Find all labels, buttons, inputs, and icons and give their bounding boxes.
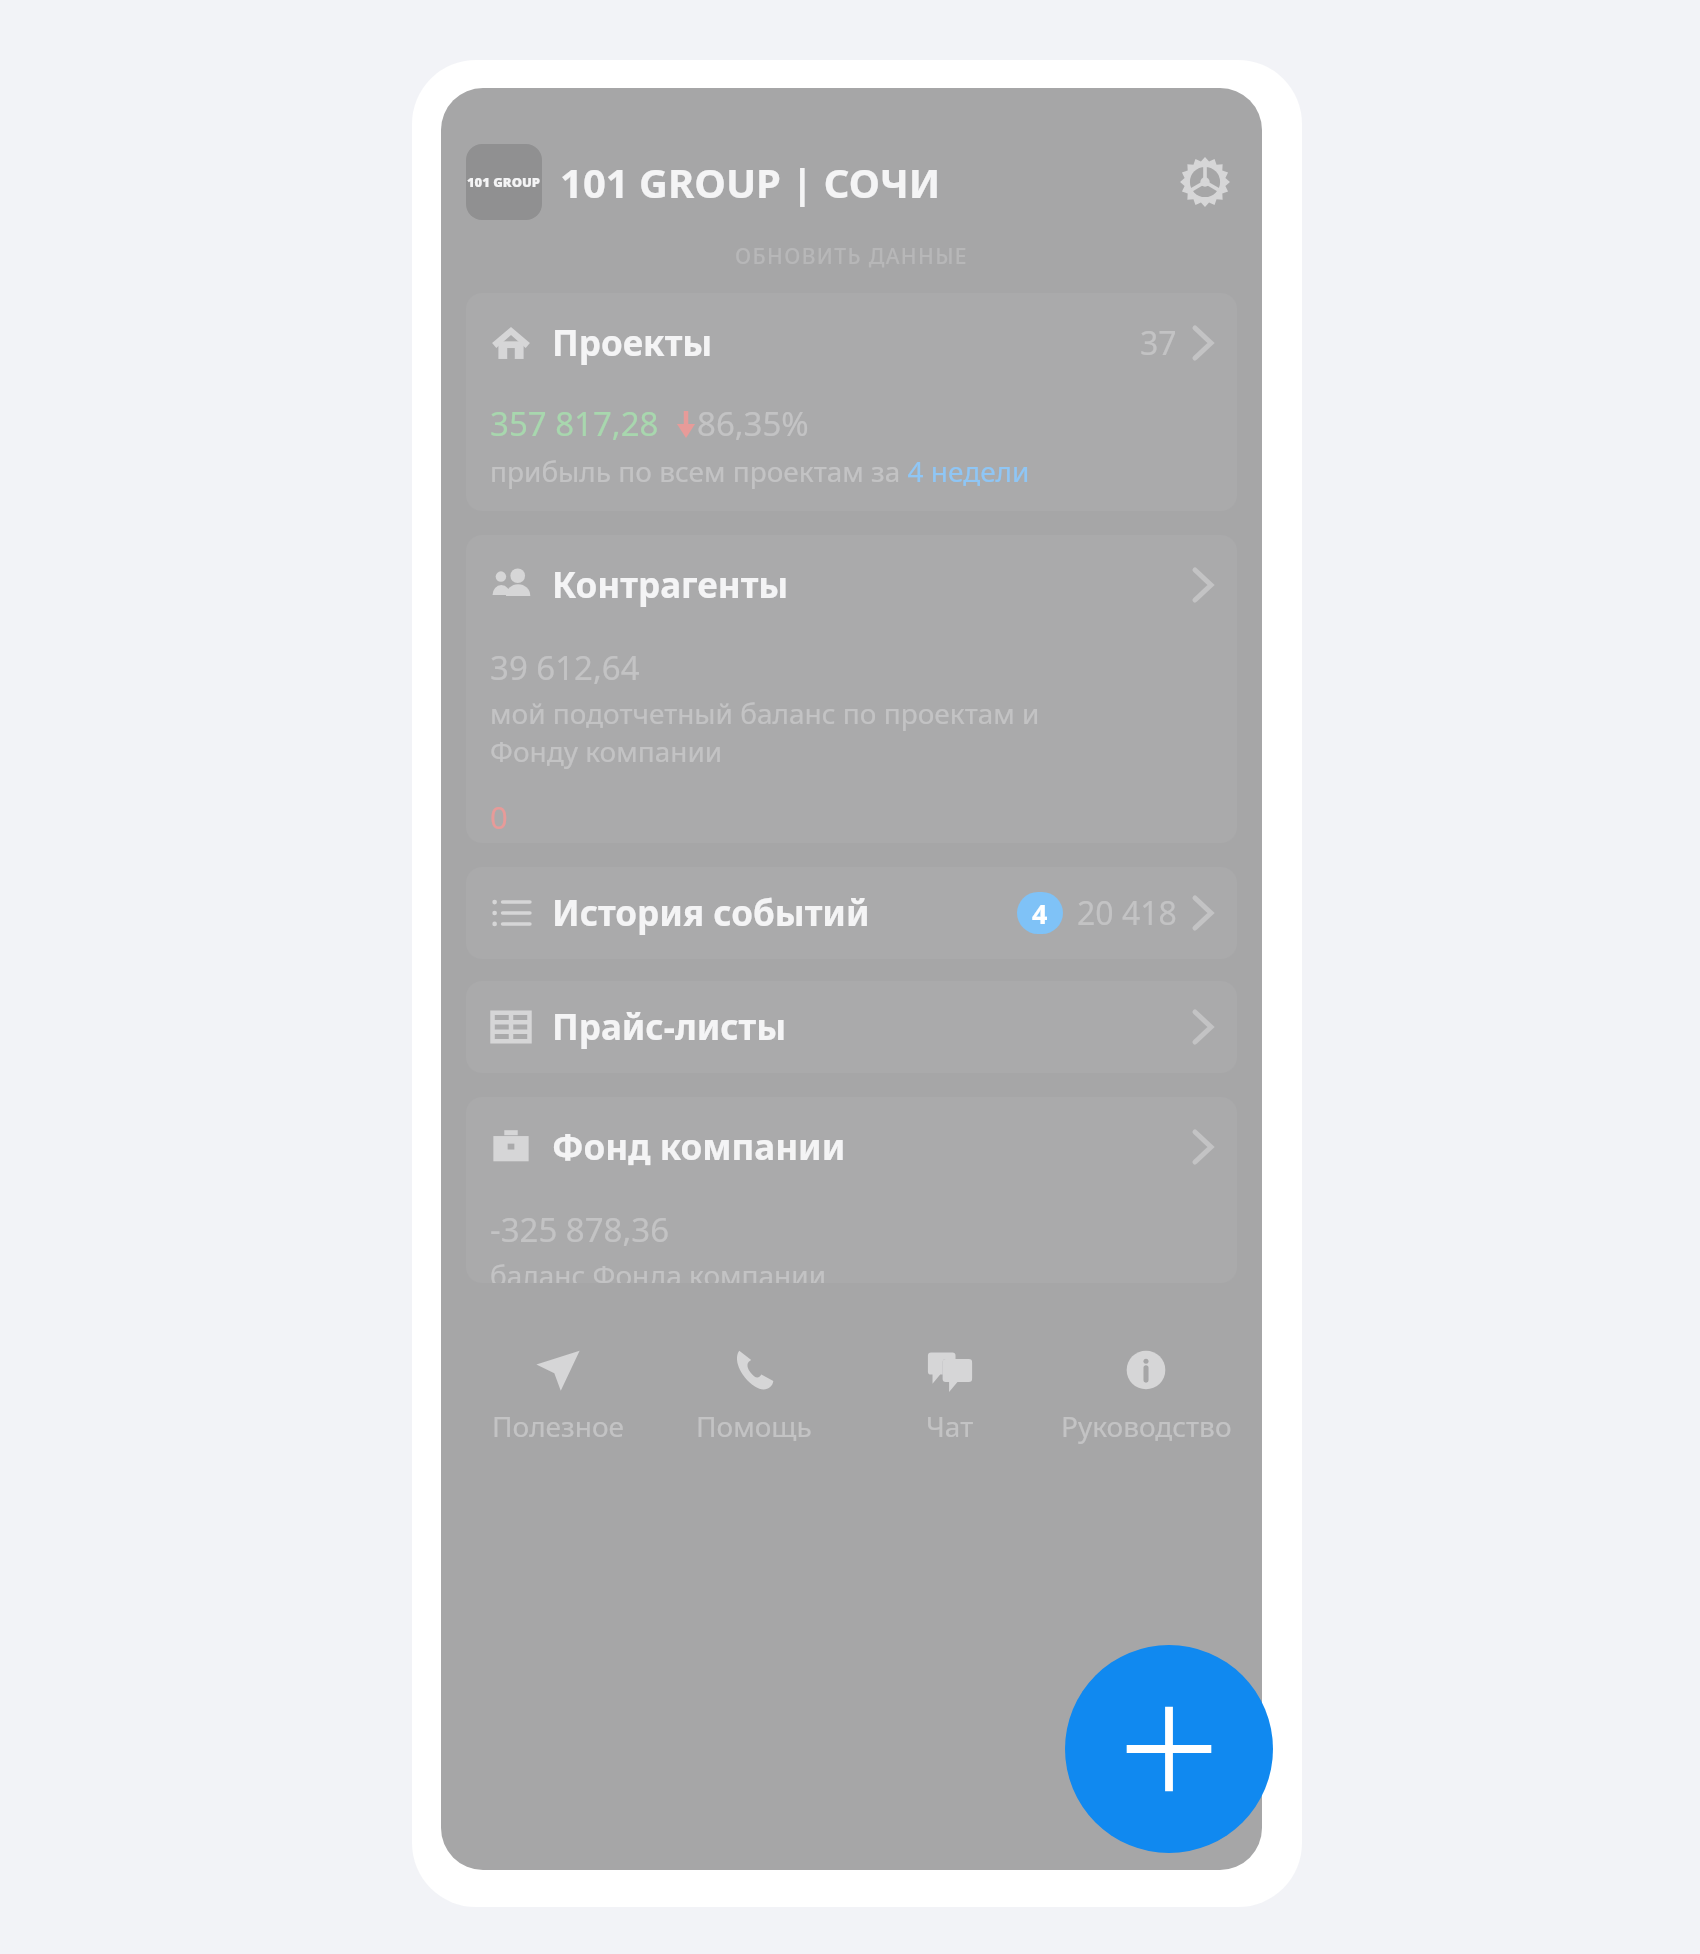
staticText: 86,35% bbox=[697, 401, 809, 446]
button[interactable]: Полезное bbox=[459, 1339, 656, 1453]
button[interactable]: Add bbox=[1065, 1645, 1273, 1853]
staticText: 4 bbox=[1032, 895, 1048, 932]
button[interactable]: Помощь bbox=[656, 1339, 852, 1453]
staticText: 37 bbox=[1140, 321, 1177, 365]
staticText: Полезное bbox=[492, 1407, 624, 1445]
button[interactable]: Контрагенты bbox=[466, 535, 1237, 843]
staticText: 357 817,28 bbox=[490, 401, 659, 446]
staticText: Помощь bbox=[696, 1407, 812, 1445]
staticText: баланс Фонда компании bbox=[490, 1256, 827, 1283]
staticText: Фонд компании bbox=[552, 1123, 846, 1171]
button[interactable]: Settings bbox=[1173, 150, 1237, 214]
button[interactable]: ОБНОВИТЬ ДАННЫЕ bbox=[441, 242, 1262, 271]
staticText: прибыль по всем проектам за 4 недели bbox=[490, 452, 1030, 490]
staticText: Руководство bbox=[1061, 1407, 1232, 1445]
staticText: Чат bbox=[926, 1407, 974, 1445]
staticText: ОБНОВИТЬ ДАННЫЕ bbox=[735, 242, 968, 271]
staticText: Прайс-листы bbox=[552, 1003, 787, 1051]
button[interactable]: Чат bbox=[852, 1339, 1048, 1453]
button[interactable]: История событий bbox=[466, 867, 1237, 959]
button[interactable]: Проекты bbox=[466, 293, 1237, 511]
button[interactable]: Прайс-листы bbox=[466, 981, 1237, 1073]
staticText: Контрагенты bbox=[552, 561, 789, 609]
staticText: 20 418 bbox=[1077, 891, 1177, 935]
button[interactable]: Фонд компании bbox=[466, 1097, 1237, 1283]
staticText: -325 878,36 bbox=[490, 1207, 670, 1252]
staticText: Проекты bbox=[552, 319, 713, 367]
staticText: История событий bbox=[552, 889, 870, 937]
staticText: 39 612,64 bbox=[490, 645, 640, 690]
button[interactable]: 101 Group logo bbox=[466, 144, 542, 220]
staticText: 101 GROUP | СОЧИ bbox=[560, 155, 941, 209]
staticText: мой подотчетный баланс по проектам и bbox=[490, 694, 1040, 732]
staticText: Фонду компании bbox=[490, 732, 723, 770]
staticText: 0 bbox=[490, 796, 508, 838]
button[interactable]: Руководство bbox=[1048, 1339, 1244, 1453]
staticText: 101 GROUP bbox=[467, 173, 541, 191]
